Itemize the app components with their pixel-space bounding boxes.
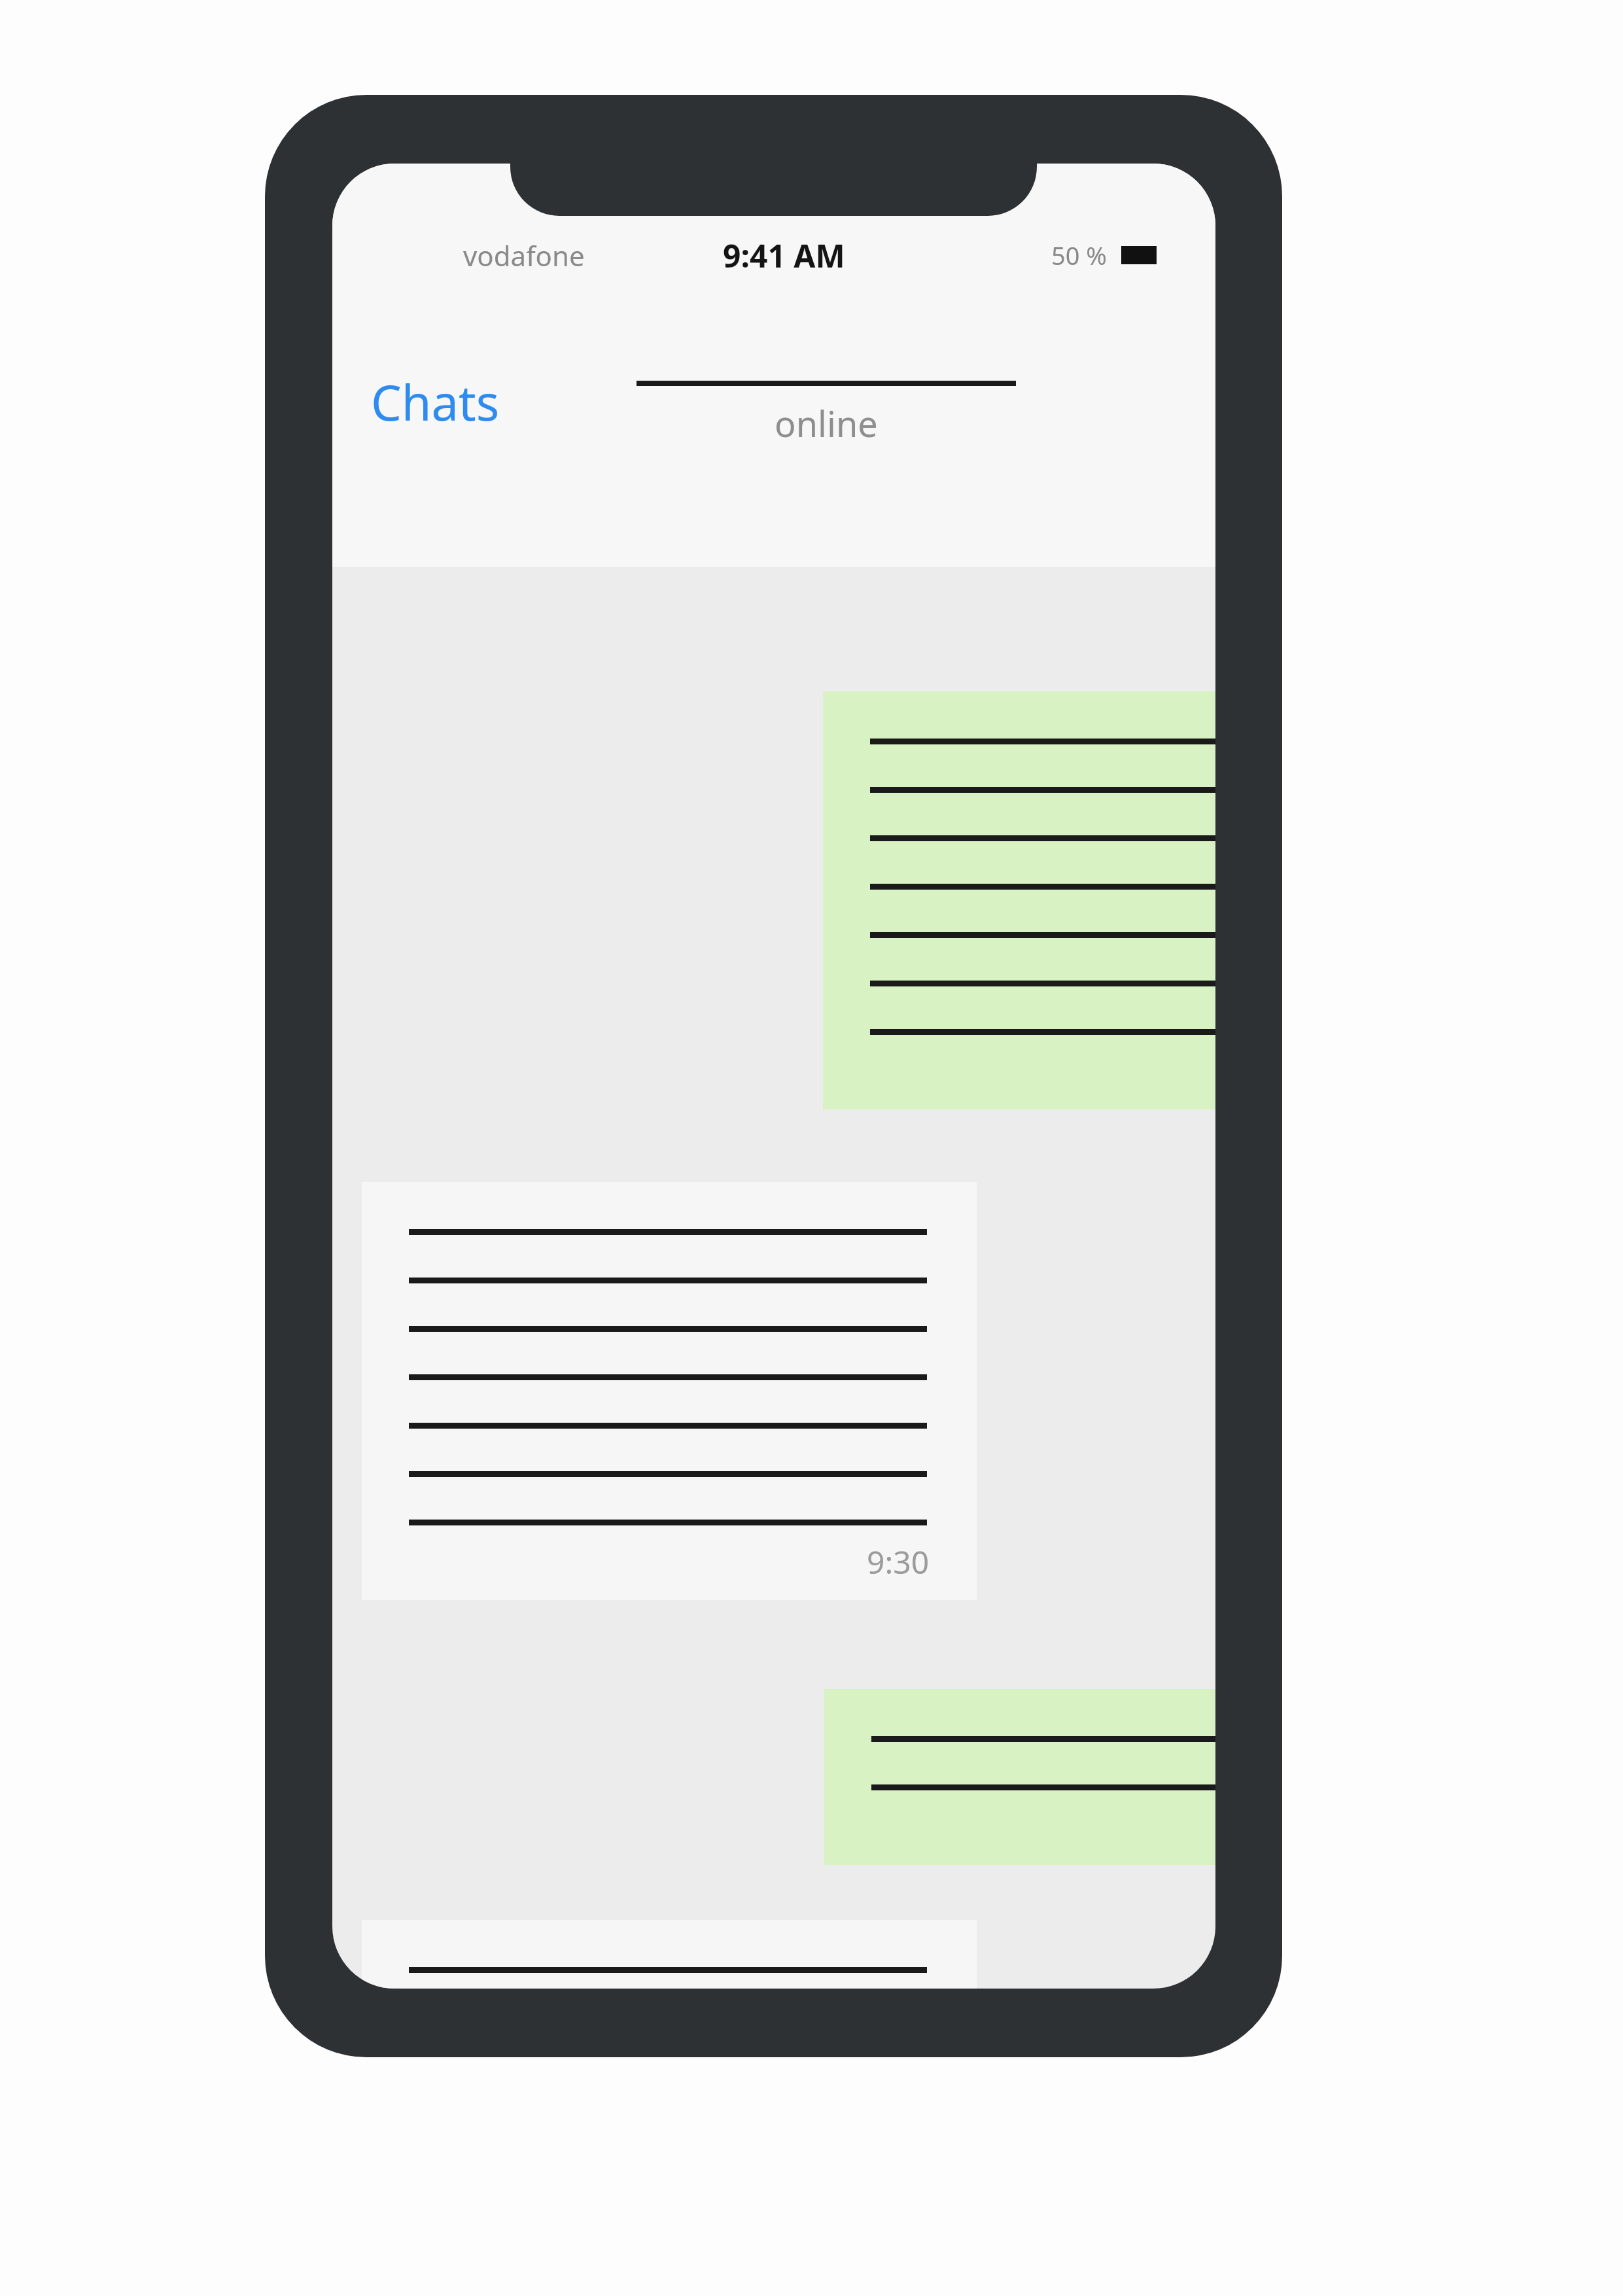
staticText: 50 %	[1051, 238, 1107, 272]
button[interactable]: 9:30	[824, 1689, 1215, 1865]
staticText: Chats	[371, 369, 500, 435]
button[interactable]: Chats	[362, 360, 509, 444]
staticText: online	[775, 399, 878, 447]
staticText: 9:30	[867, 1540, 930, 1583]
staticText: vodafone	[463, 237, 585, 274]
button[interactable]: 9:30	[823, 691, 1215, 1109]
staticText: 9:41 AM	[723, 234, 845, 277]
button[interactable]: 9:30	[362, 1182, 977, 1600]
button[interactable]: Contact, online	[637, 357, 1016, 447]
button[interactable]: 9:30	[362, 1920, 977, 1989]
